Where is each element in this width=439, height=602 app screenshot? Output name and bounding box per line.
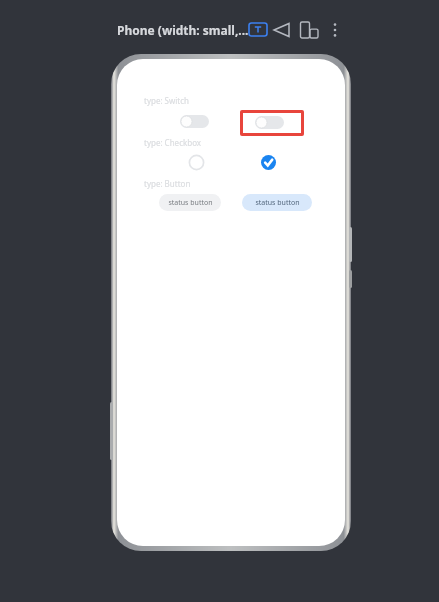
- staticText: status button: [168, 198, 213, 208]
- staticText: type: Button: [144, 178, 191, 189]
- button[interactable]: Device settings: [299, 21, 320, 39]
- button[interactable]: Checkbox unchecked: [188, 154, 205, 171]
- staticText: type: Switch: [144, 95, 190, 106]
- button[interactable]: status button: [159, 194, 221, 211]
- button[interactable]: Previous: [272, 21, 292, 39]
- button[interactable]: Switch off selected: [255, 116, 284, 129]
- button[interactable]: Checkbox checked: [260, 154, 277, 171]
- staticText: status button: [255, 198, 300, 208]
- staticText: type: Checkbox: [144, 137, 202, 148]
- button[interactable]: More options: [327, 21, 343, 39]
- button[interactable]: Text size: [249, 23, 267, 36]
- button[interactable]: status button: [242, 194, 312, 211]
- staticText: Phone (width: small,...: [117, 22, 249, 38]
- button[interactable]: Switch off: [180, 115, 209, 128]
